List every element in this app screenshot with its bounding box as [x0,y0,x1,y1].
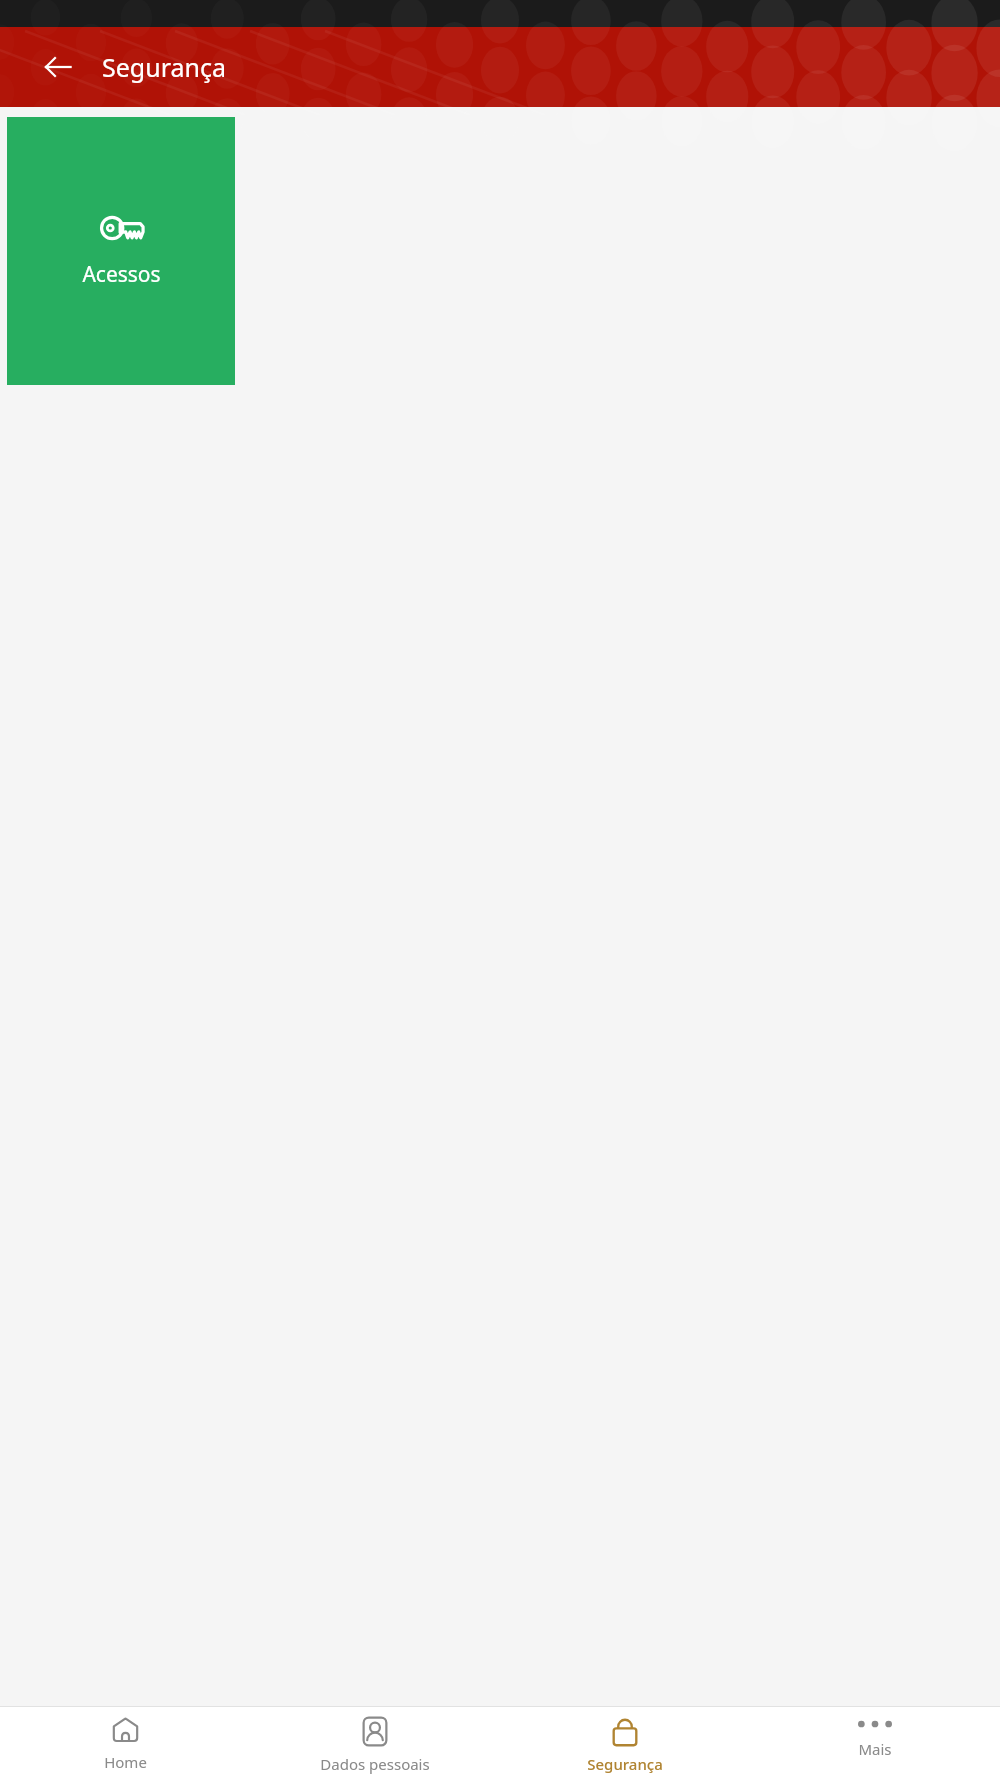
staticText: Segurança [102,50,226,84]
button[interactable]: Dados pessoais [250,1707,500,1778]
button[interactable]: Segurança [500,1707,750,1778]
button[interactable]: Voltar [34,43,82,91]
staticText: Mais [858,1739,892,1759]
staticText: Acessos [82,260,161,289]
staticText: Dados pessoais [320,1754,430,1774]
button[interactable]: Acessos [7,117,235,385]
staticText: Segurança [587,1754,663,1774]
button[interactable]: Mais [750,1707,1000,1778]
button[interactable]: Home [0,1707,250,1778]
staticText: Home [104,1752,147,1772]
